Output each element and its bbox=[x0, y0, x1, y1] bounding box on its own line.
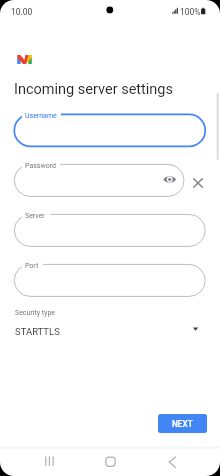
staticText: Port bbox=[25, 262, 39, 270]
staticText: STARTTLS bbox=[15, 326, 60, 337]
button[interactable]: Recent apps bbox=[41, 453, 58, 470]
button[interactable]: Show password bbox=[162, 172, 178, 188]
staticText: Security type bbox=[15, 309, 56, 317]
staticText: 10.00 bbox=[11, 7, 33, 17]
staticText: Incoming server settings bbox=[14, 81, 173, 98]
button[interactable]: Home bbox=[102, 453, 119, 470]
staticText: 100% bbox=[180, 7, 201, 17]
button[interactable]: Security type bbox=[0, 305, 220, 341]
staticText: Username bbox=[25, 112, 57, 120]
button[interactable]: NEXT bbox=[158, 414, 207, 433]
staticText: NEXT bbox=[172, 419, 193, 429]
button[interactable]: Clear password bbox=[190, 175, 206, 191]
button[interactable]: Back bbox=[164, 453, 181, 470]
staticText: Password bbox=[25, 162, 56, 170]
staticText: Server bbox=[25, 212, 45, 220]
